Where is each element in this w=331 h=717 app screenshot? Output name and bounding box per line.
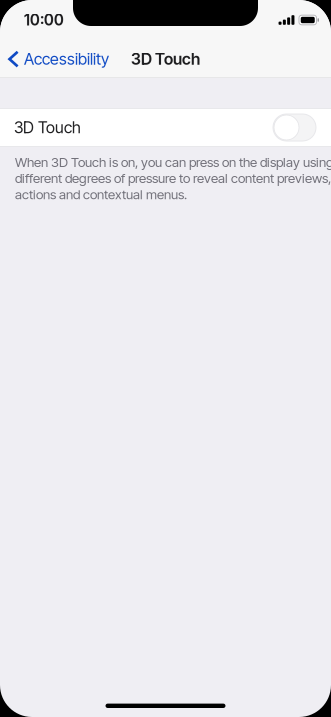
- staticText: 3D Touch: [131, 49, 200, 69]
- button[interactable]: 3D Touch: [273, 114, 316, 141]
- staticText: 3D Touch: [14, 118, 81, 137]
- staticText: When 3D Touch is on, you can press on th…: [15, 154, 331, 202]
- staticText: 10:00: [24, 11, 64, 29]
- button[interactable]: Accessibility: [0, 40, 117, 78]
- staticText: Accessibility: [24, 49, 109, 69]
